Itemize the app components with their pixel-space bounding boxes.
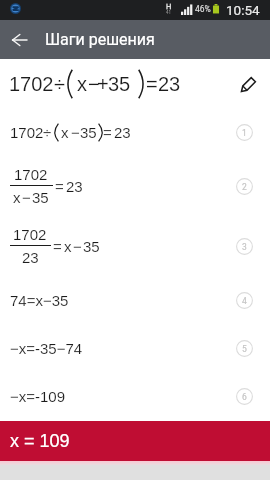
staticText: 10:54 xyxy=(226,2,260,18)
staticText: 23 xyxy=(158,73,181,95)
staticText: −x=-35−74 xyxy=(10,340,83,357)
staticText: 35 xyxy=(32,189,49,206)
staticText: = xyxy=(55,178,64,195)
staticText: 35 xyxy=(108,73,131,95)
staticText: + xyxy=(97,73,109,95)
button[interactable]: 1702 xyxy=(0,108,270,156)
staticText: 3 xyxy=(242,242,247,252)
staticText: 4 xyxy=(242,296,247,306)
staticText: 5 xyxy=(242,344,247,354)
staticText: Шаги решения xyxy=(45,30,155,49)
button[interactable]: 1702 xyxy=(0,216,270,276)
button[interactable]: −x=-109 xyxy=(0,372,270,420)
staticText: 1702 xyxy=(14,166,48,183)
staticText: 23 xyxy=(66,178,83,195)
staticText: 23 xyxy=(114,124,131,141)
staticText: 41 xyxy=(166,10,172,15)
staticText: 74=x−35 xyxy=(10,292,69,309)
button[interactable]: 74=x−35 xyxy=(0,276,270,324)
staticText: − xyxy=(22,189,31,206)
staticText: − xyxy=(88,73,100,95)
staticText: x xyxy=(77,73,87,95)
staticText: 35 xyxy=(83,238,100,255)
staticText: 1 xyxy=(242,128,247,138)
staticText: x xyxy=(64,238,72,255)
staticText: = xyxy=(146,73,158,95)
staticText: x = 109 xyxy=(10,431,70,451)
staticText: 1702 xyxy=(10,124,44,141)
staticText: x xyxy=(61,124,69,141)
staticText: = xyxy=(53,238,62,255)
staticText: 1702 xyxy=(9,73,54,95)
staticText: 35 xyxy=(80,124,97,141)
staticText: − xyxy=(71,124,80,141)
staticText: −x=-109 xyxy=(10,388,66,405)
staticText: ÷ xyxy=(54,73,65,95)
staticText: = xyxy=(103,124,112,141)
staticText: ÷ xyxy=(43,124,52,141)
staticText: 23 xyxy=(22,249,39,266)
button[interactable]: Edit xyxy=(233,69,263,99)
button[interactable]: −x=-35−74 xyxy=(0,324,270,372)
staticText: 46% xyxy=(195,4,211,14)
staticText: − xyxy=(73,238,82,255)
button[interactable]: 1702 xyxy=(0,156,270,216)
button[interactable]: x = 109 xyxy=(0,421,270,461)
staticText: H xyxy=(166,2,172,11)
staticText: 6 xyxy=(242,392,247,402)
staticText: 1702 xyxy=(13,226,47,243)
staticText: 2 xyxy=(242,182,247,192)
staticText: x xyxy=(13,189,21,206)
button[interactable]: Back xyxy=(0,20,38,59)
